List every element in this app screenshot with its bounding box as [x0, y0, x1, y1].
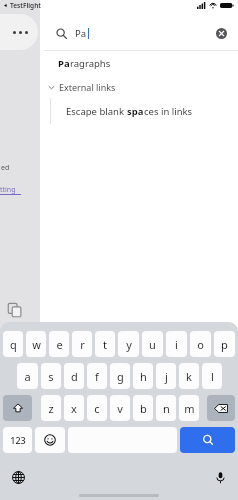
staticText: s	[48, 369, 54, 384]
staticText: g	[117, 369, 124, 384]
staticText: ed	[1, 163, 10, 173]
staticText: Pa	[75, 27, 87, 40]
button[interactable]: External links	[40, 76, 238, 98]
button[interactable]: h	[133, 363, 153, 389]
button[interactable]: More options	[0, 14, 38, 50]
button[interactable]: o	[190, 331, 211, 357]
staticText: TestFlight	[10, 1, 41, 10]
button[interactable]: q	[3, 331, 23, 357]
button[interactable]: w	[26, 331, 46, 357]
button[interactable]: e	[49, 331, 69, 357]
button[interactable]: l	[202, 363, 222, 389]
button[interactable]: d	[64, 363, 84, 389]
staticText: r	[80, 337, 85, 352]
button[interactable]: p	[214, 331, 235, 357]
staticText: z	[48, 401, 54, 416]
staticText: t	[103, 337, 107, 352]
button[interactable]: a	[17, 363, 38, 389]
staticText: e	[56, 337, 63, 352]
button[interactable]: f	[87, 363, 107, 389]
button[interactable]: x	[64, 395, 84, 421]
staticText: tting	[0, 185, 16, 195]
staticText: d	[71, 369, 78, 384]
staticText: v	[117, 401, 123, 416]
staticText: k	[186, 369, 192, 384]
staticText: ces in links	[144, 105, 193, 118]
button[interactable]: Emoji	[35, 427, 65, 453]
staticText: Pa	[58, 57, 70, 70]
button[interactable]: Change keyboard language	[8, 467, 28, 487]
button[interactable]: v	[110, 395, 130, 421]
staticText: y	[126, 337, 132, 352]
staticText: ragraphs	[70, 57, 111, 70]
button[interactable]: u	[142, 331, 163, 357]
staticText: m	[184, 401, 195, 416]
button[interactable]: TestFlight	[3, 1, 41, 10]
button[interactable]: g	[110, 363, 130, 389]
button[interactable]: Voice input	[210, 467, 230, 487]
button[interactable]: j	[156, 363, 176, 389]
button[interactable]: k	[179, 363, 199, 389]
button[interactable]: z	[41, 395, 61, 421]
staticText: a	[24, 369, 31, 384]
button[interactable]: n	[156, 395, 176, 421]
button[interactable]: b	[133, 395, 153, 421]
button[interactable]: Clear search	[212, 24, 230, 42]
button[interactable]: Shift	[3, 395, 32, 421]
staticText: spa	[127, 105, 144, 118]
button[interactable]: m	[179, 395, 199, 421]
button[interactable]: Search	[180, 427, 235, 453]
staticText: f	[95, 369, 99, 384]
staticText: Escape blank	[66, 105, 127, 118]
button[interactable]: Escape blank	[40, 98, 238, 124]
staticText: j	[165, 369, 168, 384]
staticText: b	[140, 401, 147, 416]
other: Copy	[8, 303, 22, 317]
button[interactable]: t	[95, 331, 115, 357]
button[interactable]: Pa	[40, 22, 238, 44]
staticText: n	[163, 401, 170, 416]
button[interactable]: Backspace	[207, 395, 235, 421]
staticText: 123	[10, 434, 26, 446]
button[interactable]: Pa	[40, 51, 238, 76]
staticText: q	[10, 337, 17, 352]
button[interactable]: s	[41, 363, 61, 389]
button[interactable]: r	[72, 331, 92, 357]
staticText: h	[140, 369, 147, 384]
staticText: p	[221, 337, 228, 352]
staticText: u	[149, 337, 156, 352]
staticText: w	[32, 337, 41, 352]
button[interactable]: y	[118, 331, 139, 357]
staticText: l	[211, 369, 214, 384]
staticText: x	[71, 401, 77, 416]
staticText: i	[175, 337, 178, 352]
staticText: c	[94, 401, 100, 416]
button[interactable]: c	[87, 395, 107, 421]
button[interactable]: 123	[3, 427, 32, 453]
staticText: External links	[59, 81, 116, 93]
button[interactable]: i	[166, 331, 187, 357]
staticText: o	[197, 337, 204, 352]
